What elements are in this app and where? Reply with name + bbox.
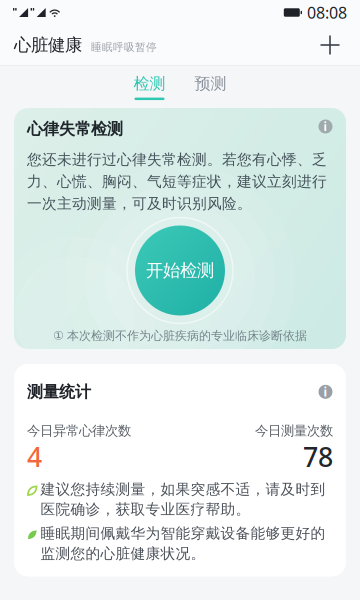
staticText: 今日异常心律次数 [27, 423, 131, 439]
staticText: 4 [27, 439, 42, 474]
button[interactable]: 预测 [187, 71, 233, 102]
button[interactable]: 检测 [126, 71, 172, 102]
staticText: 心律失常检测 [27, 119, 123, 139]
button[interactable]: Info [318, 384, 333, 399]
staticText: 今日测量次数 [255, 423, 333, 439]
staticText: i [323, 118, 327, 134]
staticText: 测量统计 [27, 382, 91, 402]
staticText: i [323, 384, 327, 400]
staticText: ① [53, 329, 64, 342]
staticText: 检测 [133, 74, 165, 94]
staticText: 建议您持续测量，如果突感不适，请及时到医院确诊，获取专业医疗帮助。 [40, 480, 325, 518]
staticText: 您还未进行过心律失常检测。若您有心悸、乏力、心慌、胸闷、气短等症状，建议立刻进行… [27, 151, 327, 213]
button[interactable]: Info [318, 119, 333, 134]
staticText: 睡眠呼吸暂停 [91, 41, 157, 54]
staticText: 本次检测不作为心脏疾病的专业临床诊断依据 [67, 328, 307, 343]
staticText: 睡眠期间佩戴华为智能穿戴设备能够更好的监测您的心脏健康状况。 [40, 524, 325, 562]
staticText: 开始检测 [146, 260, 214, 281]
staticText: 预测 [194, 74, 226, 94]
button[interactable]: 开始检测 [135, 225, 225, 315]
staticText: 08:08 [307, 2, 347, 23]
staticText: 心脏健康 [14, 34, 82, 56]
staticText: 78 [303, 439, 333, 474]
button[interactable]: Add [310, 25, 360, 65]
